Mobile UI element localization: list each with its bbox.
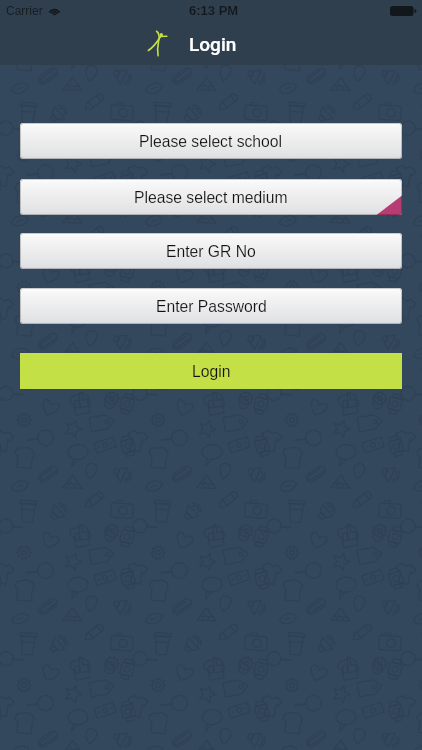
button[interactable]: Enter Password <box>20 288 402 324</box>
staticText: Enter Password <box>156 298 267 316</box>
other: App logo <box>148 31 167 56</box>
staticText: Login <box>192 363 231 381</box>
staticText: Login <box>189 33 237 55</box>
staticText: Please select school <box>139 133 283 151</box>
button[interactable]: Login <box>20 353 402 389</box>
button[interactable]: Please select medium <box>20 179 402 215</box>
button[interactable]: Please select school <box>20 123 402 159</box>
staticText: Carrier <box>6 4 43 17</box>
button[interactable]: Enter GR No <box>20 233 402 269</box>
staticText: 6:13 PM <box>189 3 239 18</box>
staticText: Enter GR No <box>166 243 256 261</box>
staticText: Please select medium <box>134 189 288 207</box>
